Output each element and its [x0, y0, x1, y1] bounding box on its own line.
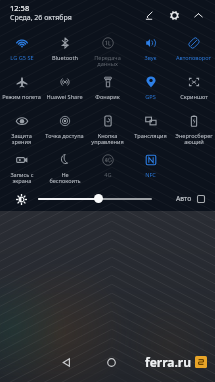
- staticText: GPS: [145, 93, 156, 101]
- button[interactable]: 4G: [86, 147, 129, 186]
- staticText: Авто: [176, 194, 192, 203]
- staticText: NFC: [145, 171, 156, 179]
- staticText: 12:58: [10, 3, 30, 13]
- staticText: Фонарик: [95, 93, 120, 101]
- staticText: 4G: [104, 171, 112, 179]
- button[interactable]: Settings: [167, 8, 181, 22]
- staticText: Трансляция: [134, 132, 167, 140]
- button[interactable]: Трансляция: [129, 108, 172, 147]
- staticText: Автоповорот: [176, 54, 211, 62]
- button[interactable]: Точка доступа: [43, 108, 86, 147]
- button[interactable]: Скриншот: [172, 69, 215, 108]
- staticText: Защита зрения: [11, 132, 32, 146]
- button[interactable]: Auto brightness: [197, 195, 205, 203]
- staticText: LG G5 SE: [10, 54, 34, 62]
- button[interactable]: Режим полета: [0, 69, 43, 108]
- button[interactable]: Brightness: [14, 192, 28, 206]
- button[interactable]: LG G5 SE: [0, 30, 43, 69]
- button[interactable]: Bluetooth: [43, 30, 86, 69]
- button[interactable]: Не беспокоить: [43, 147, 86, 186]
- button[interactable]: Передача данных: [86, 30, 129, 69]
- staticText: Запись с экрана: [10, 171, 34, 185]
- staticText: Энергосберег ающий: [175, 132, 213, 146]
- button[interactable]: Edit: [142, 8, 156, 22]
- button[interactable]: Защита зрения: [0, 108, 43, 147]
- staticText: Кнопка управления: [91, 132, 124, 146]
- button[interactable]: Запись с экрана: [0, 147, 43, 186]
- staticText: Huawei Share: [46, 93, 83, 101]
- button[interactable]: Энергосберег ающий: [172, 108, 215, 147]
- staticText: Bluetooth: [52, 54, 78, 62]
- button[interactable]: Кнопка управления: [86, 108, 129, 147]
- staticText: Не беспокоить: [49, 171, 81, 185]
- staticText: Среда, 26 октября: [10, 13, 72, 23]
- button[interactable]: Звук: [129, 30, 172, 69]
- button[interactable]: Автоповорот: [172, 30, 215, 69]
- button[interactable]: Home: [99, 350, 123, 374]
- staticText: Звук: [144, 54, 157, 62]
- staticText: Режим полета: [2, 93, 41, 101]
- button[interactable]: Back: [54, 350, 78, 374]
- staticText: Передача данных: [94, 54, 121, 68]
- staticText: Скриншот: [180, 93, 208, 101]
- staticText: ferra.ru: [145, 354, 192, 370]
- button[interactable]: GPS: [129, 69, 172, 108]
- button[interactable]: Фонарик: [86, 69, 129, 108]
- button[interactable]: NFC: [129, 147, 172, 186]
- button[interactable]: Collapse: [191, 8, 205, 22]
- button[interactable]: Huawei Share: [43, 69, 86, 108]
- staticText: Точка доступа: [45, 132, 84, 140]
